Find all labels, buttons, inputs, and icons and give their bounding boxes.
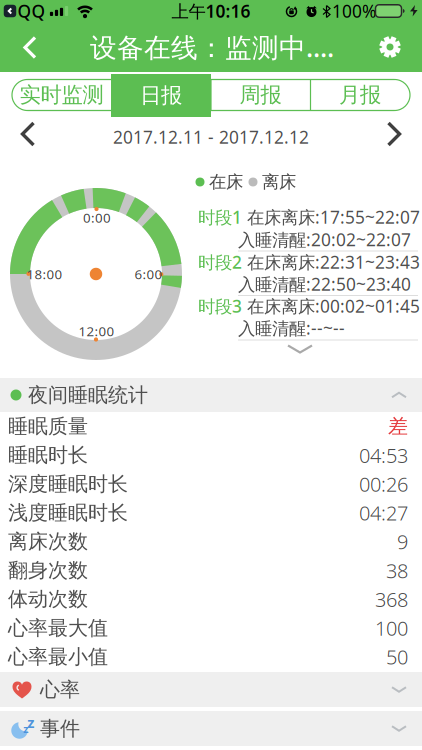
button[interactable]: Next day xyxy=(374,114,414,154)
staticText: 实时监测 xyxy=(19,82,103,108)
staticText: 睡眠时长 xyxy=(8,443,88,467)
staticText: 时段3 xyxy=(198,294,242,317)
staticText: 离床次数 xyxy=(8,529,88,554)
staticText: 心率 xyxy=(40,677,80,702)
button[interactable]: 月报 xyxy=(310,79,409,110)
button[interactable]: z xyxy=(0,711,422,746)
button[interactable]: Back xyxy=(8,25,52,69)
staticText: z xyxy=(27,712,34,732)
staticText: 离床 xyxy=(262,171,296,193)
staticText: 18:00 xyxy=(26,265,62,283)
staticText: 周报 xyxy=(239,82,281,108)
button[interactable]: 实时监测 xyxy=(12,79,111,110)
staticText: 100 xyxy=(375,615,408,641)
staticText: 04:53 xyxy=(359,442,408,468)
staticText: 睡眠质量 xyxy=(8,414,88,439)
button[interactable]: 夜间睡眠统计 xyxy=(0,378,422,412)
staticText: 心率最大值 xyxy=(8,616,108,640)
staticText: 04:27 xyxy=(359,499,408,526)
staticText: 50 xyxy=(386,643,408,670)
staticText: 体动次数 xyxy=(8,587,88,611)
staticText: 时段2 xyxy=(198,250,242,273)
staticText: 差 xyxy=(388,414,408,439)
staticText: 368 xyxy=(375,586,408,612)
staticText: 9 xyxy=(397,528,408,555)
staticText: 浅度睡眠时长 xyxy=(8,500,128,525)
staticText: 时段1 xyxy=(198,205,242,228)
staticText: 在床 xyxy=(209,171,243,193)
staticText: 设备在线：监测中.... xyxy=(90,29,334,65)
staticText: 2017.12.11 - 2017.12.12 xyxy=(113,125,309,148)
staticText: 0:00 xyxy=(83,209,111,226)
staticText: 入睡清醒:22:50~23:40 xyxy=(238,272,411,295)
staticText: 在床离床:00:02~01:45 xyxy=(247,294,420,317)
staticText: 上午10:16 xyxy=(171,0,250,22)
staticText: 日报 xyxy=(140,82,182,109)
staticText: 翻身次数 xyxy=(8,558,88,583)
staticText: 在床离床:17:55~22:07 xyxy=(247,205,420,228)
staticText: 心率最小值 xyxy=(8,644,108,669)
staticText: 入睡清醒:--~-- xyxy=(238,316,345,339)
button[interactable]: 周报 xyxy=(211,79,310,110)
staticText: 38 xyxy=(386,557,408,584)
staticText: 100% xyxy=(332,0,376,22)
button[interactable]: Previous day xyxy=(8,114,48,154)
staticText: 夜间睡眠统计 xyxy=(28,383,148,407)
staticText: 12:00 xyxy=(78,322,114,340)
staticText: QQ xyxy=(17,0,45,22)
button[interactable]: Settings xyxy=(368,25,412,69)
staticText: 在床离床:22:31~23:43 xyxy=(247,250,420,273)
staticText: 00:26 xyxy=(359,471,408,497)
staticText: 事件 xyxy=(40,716,80,741)
button[interactable]: Show more periods xyxy=(270,337,330,361)
staticText: 6:00 xyxy=(134,265,162,283)
staticText: 入睡清醒:20:02~22:07 xyxy=(238,228,411,251)
staticText: 深度睡眠时长 xyxy=(8,472,128,496)
staticText: z xyxy=(23,722,28,736)
button[interactable]: 心率 xyxy=(0,672,422,707)
staticText: 月报 xyxy=(339,82,381,108)
button[interactable]: 日报 xyxy=(111,74,211,117)
